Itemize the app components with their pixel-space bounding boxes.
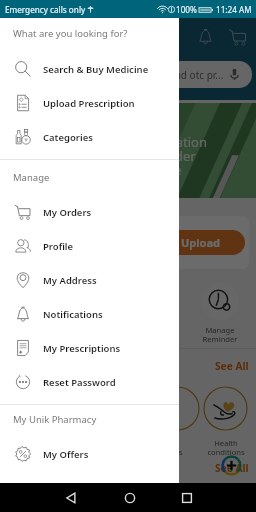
staticText: Profile	[43, 240, 74, 253]
button[interactable]: See All	[215, 461, 249, 475]
button[interactable]: Recent apps	[176, 487, 198, 509]
button[interactable]: Add	[221, 455, 242, 476]
button[interactable]: Home	[119, 487, 141, 509]
staticText: Search for medicine, healthcare and otc …	[18, 68, 224, 82]
button[interactable]: Back	[60, 487, 82, 509]
staticText: 100%	[176, 4, 197, 15]
staticText: Emergency calls only	[5, 4, 86, 15]
staticText: Medication reminder service	[139, 133, 207, 179]
other: Voice search	[228, 68, 241, 81]
button[interactable]: My Prescriptions	[0, 331, 179, 365]
button[interactable]: Notifications	[197, 28, 214, 45]
staticText: My Prescriptions	[43, 342, 121, 355]
button[interactable]: My Address	[0, 263, 179, 297]
staticText: My Offers	[43, 448, 89, 461]
staticText: Reset Password	[43, 376, 116, 389]
staticText: Upload Prescription	[43, 97, 135, 110]
button[interactable]: Upload Prescription	[0, 86, 179, 120]
staticText: ts	[176, 447, 183, 457]
button[interactable]: Reset Password	[0, 365, 179, 399]
staticText: Health conditions	[198, 438, 254, 457]
button[interactable]: My Orders	[0, 195, 179, 229]
staticText: My Orders	[43, 206, 92, 219]
staticText: Search & Buy Medicine	[43, 63, 149, 76]
staticText: Upload your prescription	[17, 228, 81, 257]
button[interactable]: Search & Buy Medicine	[0, 52, 179, 86]
button[interactable]: Upload	[159, 230, 245, 255]
button[interactable]: Categories	[0, 120, 179, 154]
staticText: My Unik Pharmacy	[13, 413, 97, 426]
button[interactable]: Notifications	[0, 297, 179, 331]
button[interactable]: My Offers	[0, 437, 179, 471]
staticText: 11:24 AM	[216, 4, 252, 15]
button[interactable]: Shopping cart	[229, 28, 247, 46]
staticText: Notifications	[43, 308, 103, 321]
button[interactable]: Profile	[0, 229, 179, 263]
staticText: Upload	[181, 235, 220, 250]
button[interactable]: Search for medicine, healthcare and otc …	[8, 61, 252, 88]
staticText: Categories	[43, 131, 93, 144]
staticText: Manage	[13, 171, 50, 184]
staticText: What are you looking for?	[13, 27, 128, 40]
button[interactable]: Health conditions	[203, 386, 248, 431]
staticText: My Address	[43, 274, 97, 287]
staticText: Manage Reminder	[194, 325, 246, 344]
button[interactable]: See All	[215, 359, 249, 373]
